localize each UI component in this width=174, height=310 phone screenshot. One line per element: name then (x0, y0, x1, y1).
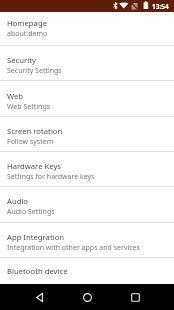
staticText: Hardware Keys (7, 161, 62, 171)
staticText: Integration with other apps and services (7, 243, 140, 253)
button[interactable]: Screen rotation (0, 123, 174, 153)
button[interactable]: App Integration (0, 229, 174, 259)
staticText: Screen rotation (7, 126, 63, 136)
staticText: Homepage (7, 18, 47, 28)
staticText: Web (7, 91, 24, 101)
staticText: Audio (7, 196, 29, 206)
staticText: 13:54 (152, 2, 169, 11)
button[interactable]: Audio (0, 193, 174, 223)
staticText: Settings for hardware keys (7, 172, 95, 182)
staticText: Security Settings (7, 66, 62, 76)
button[interactable]: Bluetooth device (0, 263, 174, 293)
staticText: Bluetooth device (7, 266, 68, 276)
staticText: Audio Settings (7, 207, 55, 217)
button[interactable]: Homepage (0, 15, 174, 45)
staticText: about:demo (7, 29, 48, 39)
button[interactable]: Security (0, 52, 174, 82)
staticText: Security (7, 55, 36, 65)
staticText: Follow system (7, 137, 54, 147)
staticText: Web Settings (7, 102, 51, 112)
button[interactable] (122, 284, 148, 310)
button[interactable] (26, 284, 52, 310)
button[interactable]: Web (0, 88, 174, 118)
button[interactable] (74, 284, 100, 310)
staticText: App Integration (7, 232, 65, 242)
button[interactable]: Hardware Keys (0, 158, 174, 188)
